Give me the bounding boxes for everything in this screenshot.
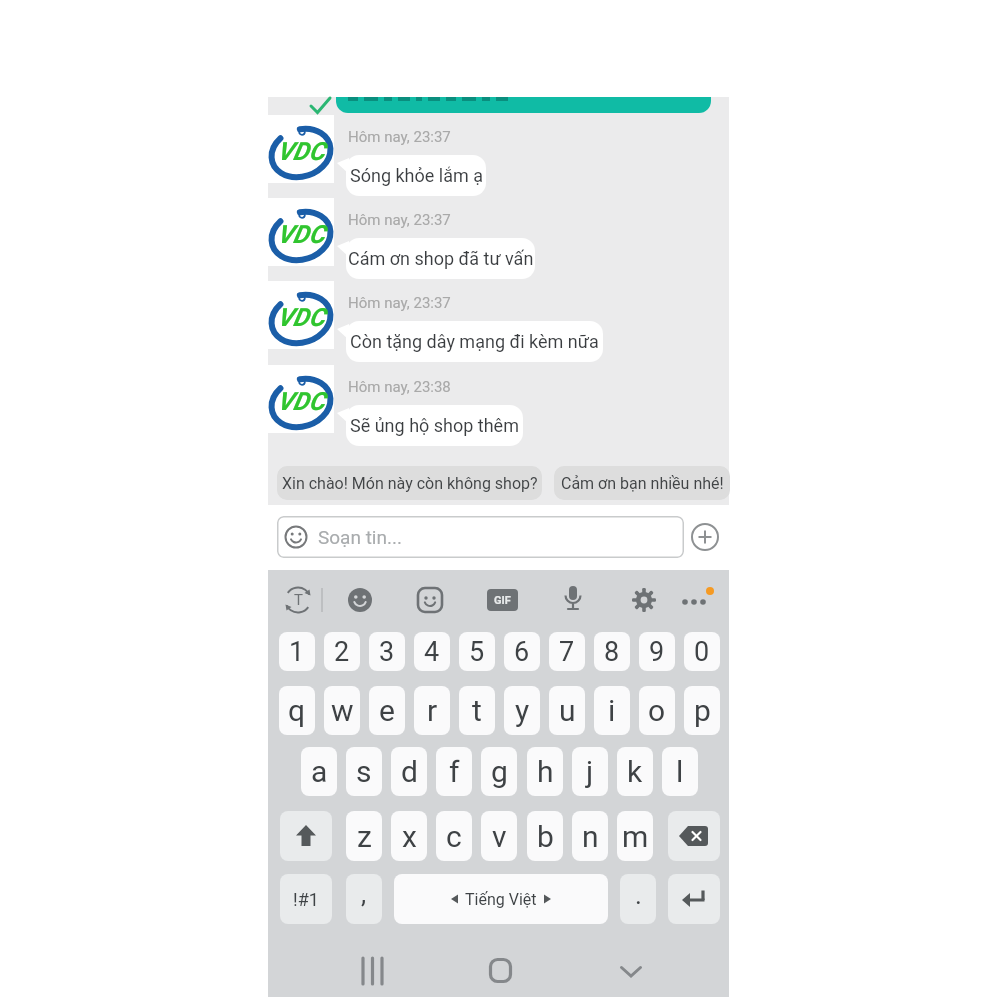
button[interactable]: j <box>572 747 608 796</box>
button[interactable] <box>632 588 656 612</box>
staticText: 9 <box>649 636 665 668</box>
button[interactable] <box>691 523 719 551</box>
button[interactable]: T <box>283 585 313 615</box>
button[interactable]: Sẽ ủng hộ shop thêm <box>346 405 523 446</box>
staticText: Hôm nay, 23:38 <box>348 378 451 396</box>
button[interactable]: y <box>504 686 540 735</box>
staticText: i <box>608 693 616 728</box>
staticText: Tiếng Việt <box>465 890 537 909</box>
button[interactable]: i <box>594 686 630 735</box>
staticText: 1 <box>289 636 305 668</box>
button[interactable]: m <box>617 811 653 861</box>
button[interactable]: Xin chào! Món này còn không shop? <box>277 466 542 500</box>
button[interactable] <box>680 588 716 612</box>
staticText: GIF <box>494 594 511 607</box>
staticText: Cám ơn shop đã tư vấn <box>348 248 534 269</box>
button[interactable]: e <box>369 686 405 735</box>
button[interactable] <box>668 811 720 861</box>
staticText: q <box>288 693 306 728</box>
staticText: k <box>627 754 643 789</box>
button[interactable]: 8 <box>594 632 630 671</box>
staticText: j <box>586 754 594 789</box>
staticText: h <box>537 754 554 789</box>
button[interactable]: Cảm ơn bạn nhiều nhé! <box>554 466 730 500</box>
button[interactable]: l <box>662 747 698 796</box>
staticText: Cảm ơn bạn nhiều nhé! <box>561 474 724 493</box>
staticText: w <box>331 693 354 728</box>
button[interactable]: Cám ơn shop đã tư vấn <box>346 238 535 279</box>
button[interactable]: 5 <box>459 632 495 671</box>
button[interactable]: n <box>572 811 608 861</box>
button[interactable]: . <box>620 874 656 924</box>
button[interactable]: 6 <box>504 632 540 671</box>
staticText: b <box>537 819 554 854</box>
button[interactable]: 7 <box>549 632 585 671</box>
button[interactable] <box>361 957 387 985</box>
button[interactable]: a <box>301 747 337 796</box>
staticText: . <box>635 880 642 910</box>
staticText: m <box>622 819 649 854</box>
button[interactable]: 0 <box>684 632 720 671</box>
button[interactable]: b <box>527 811 563 861</box>
button[interactable]: v <box>481 811 517 861</box>
button[interactable]: f <box>436 747 472 796</box>
staticText: , <box>361 879 367 909</box>
button[interactable]: o <box>639 686 675 735</box>
button[interactable]: 9 <box>639 632 675 671</box>
staticText: s <box>356 754 372 789</box>
staticText: v <box>492 819 507 854</box>
button[interactable]: 4 <box>414 632 450 671</box>
button[interactable]: 1 <box>279 632 315 671</box>
button[interactable] <box>620 966 642 978</box>
button[interactable]: d <box>391 747 427 796</box>
button[interactable]: k <box>617 747 653 796</box>
button[interactable] <box>668 874 720 924</box>
staticText: f <box>449 754 460 789</box>
staticText: r <box>427 693 438 728</box>
button[interactable]: g <box>481 747 517 796</box>
staticText: a <box>311 754 328 789</box>
staticText: 6 <box>514 636 530 668</box>
button[interactable]: s <box>346 747 382 796</box>
button[interactable]: u <box>549 686 585 735</box>
button[interactable]: 3 <box>369 632 405 671</box>
button[interactable]: x <box>391 811 427 861</box>
staticText: VDC <box>277 137 325 166</box>
button[interactable]: Tiếng Việt <box>394 874 608 924</box>
button[interactable]: t <box>459 686 495 735</box>
staticText: Soạn tin... <box>318 526 403 548</box>
staticText: 0 <box>694 636 710 668</box>
button[interactable]: Sóng khỏe lắm ạ <box>346 155 486 196</box>
staticText: T <box>294 591 303 609</box>
staticText: t <box>472 693 482 728</box>
staticText: VDC <box>277 387 325 416</box>
staticText: d <box>401 754 418 789</box>
button[interactable]: r <box>414 686 450 735</box>
button[interactable]: h <box>527 747 563 796</box>
button[interactable]: c <box>436 811 472 861</box>
button[interactable]: 2 <box>324 632 360 671</box>
staticText: Hôm nay, 23:37 <box>348 128 451 146</box>
button[interactable] <box>418 588 442 612</box>
button[interactable]: q <box>279 686 315 735</box>
button[interactable] <box>348 588 372 612</box>
staticText: 7 <box>559 636 575 668</box>
button[interactable]: GIF <box>487 589 518 611</box>
staticText: c <box>446 819 462 854</box>
button[interactable]: !#1 <box>280 874 332 924</box>
staticText: x <box>402 819 417 854</box>
button[interactable]: z <box>346 811 382 861</box>
button[interactable] <box>489 958 512 983</box>
staticText: 5 <box>469 636 485 668</box>
button[interactable] <box>280 811 332 861</box>
button[interactable]: Còn tặng dây mạng đi kèm nữa <box>346 321 603 362</box>
button[interactable]: p <box>684 686 720 735</box>
button[interactable]: w <box>324 686 360 735</box>
staticText: u <box>559 693 576 728</box>
button[interactable]: Soạn tin... <box>277 516 684 558</box>
button[interactable] <box>563 586 583 614</box>
staticText: Hôm nay, 23:37 <box>348 211 451 229</box>
staticText: 4 <box>424 636 440 668</box>
staticText: Sẽ ủng hộ shop thêm <box>350 415 519 436</box>
button[interactable]: , <box>346 874 382 924</box>
